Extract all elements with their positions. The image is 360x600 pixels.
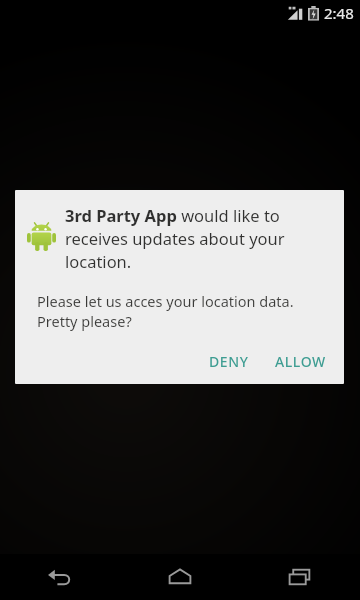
button[interactable]: Back [0,554,120,600]
staticText: DENY [209,352,249,371]
button[interactable]: ALLOW [267,347,334,376]
staticText: ALLOW [275,352,326,371]
staticText: Please let us acces your location data. … [37,291,344,332]
staticText: 2:48 [324,3,354,23]
button[interactable]: DENY [201,347,257,376]
button[interactable]: Recent apps [240,554,360,600]
staticText: 3rd Party App would like to receives upd… [65,204,330,273]
button[interactable]: Home [120,554,240,600]
